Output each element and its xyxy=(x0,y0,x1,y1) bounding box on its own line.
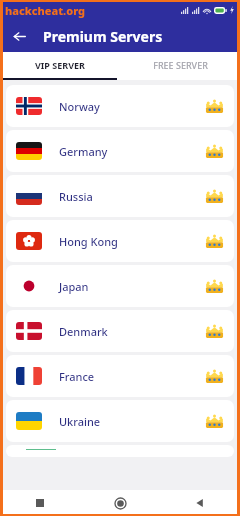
button[interactable]: VIP SERVER xyxy=(0,52,120,78)
staticText: Hong Kong xyxy=(59,234,118,249)
button[interactable]: Norway xyxy=(6,85,234,127)
button[interactable]: Home xyxy=(80,490,160,516)
button[interactable]: Germany xyxy=(6,130,234,172)
button[interactable]: Hong Kong xyxy=(6,220,234,262)
button[interactable]: Ukraine xyxy=(6,400,234,442)
button[interactable]: France xyxy=(6,355,234,397)
staticText: Ukraine xyxy=(59,414,101,429)
button[interactable]: Back xyxy=(160,490,240,516)
staticText: hackcheat.org xyxy=(5,3,86,18)
staticText: Denmark xyxy=(59,324,108,339)
staticText: FREE SERVER xyxy=(153,59,208,71)
staticText: France xyxy=(59,369,95,384)
button[interactable]: Back xyxy=(9,26,30,47)
button[interactable]: Recent apps xyxy=(0,490,80,516)
button[interactable]: Russia xyxy=(6,175,234,217)
button[interactable]: Denmark xyxy=(6,310,234,352)
staticText: Norway xyxy=(59,99,100,114)
staticText: VIP SERVER xyxy=(35,59,85,71)
button[interactable]: Japan xyxy=(6,265,234,307)
button[interactable] xyxy=(6,445,234,457)
staticText: Japan xyxy=(59,279,89,294)
button[interactable]: FREE SERVER xyxy=(120,52,240,78)
staticText: Premium Servers xyxy=(43,27,163,46)
staticText: Russia xyxy=(59,189,93,204)
staticText: Germany xyxy=(59,144,108,159)
